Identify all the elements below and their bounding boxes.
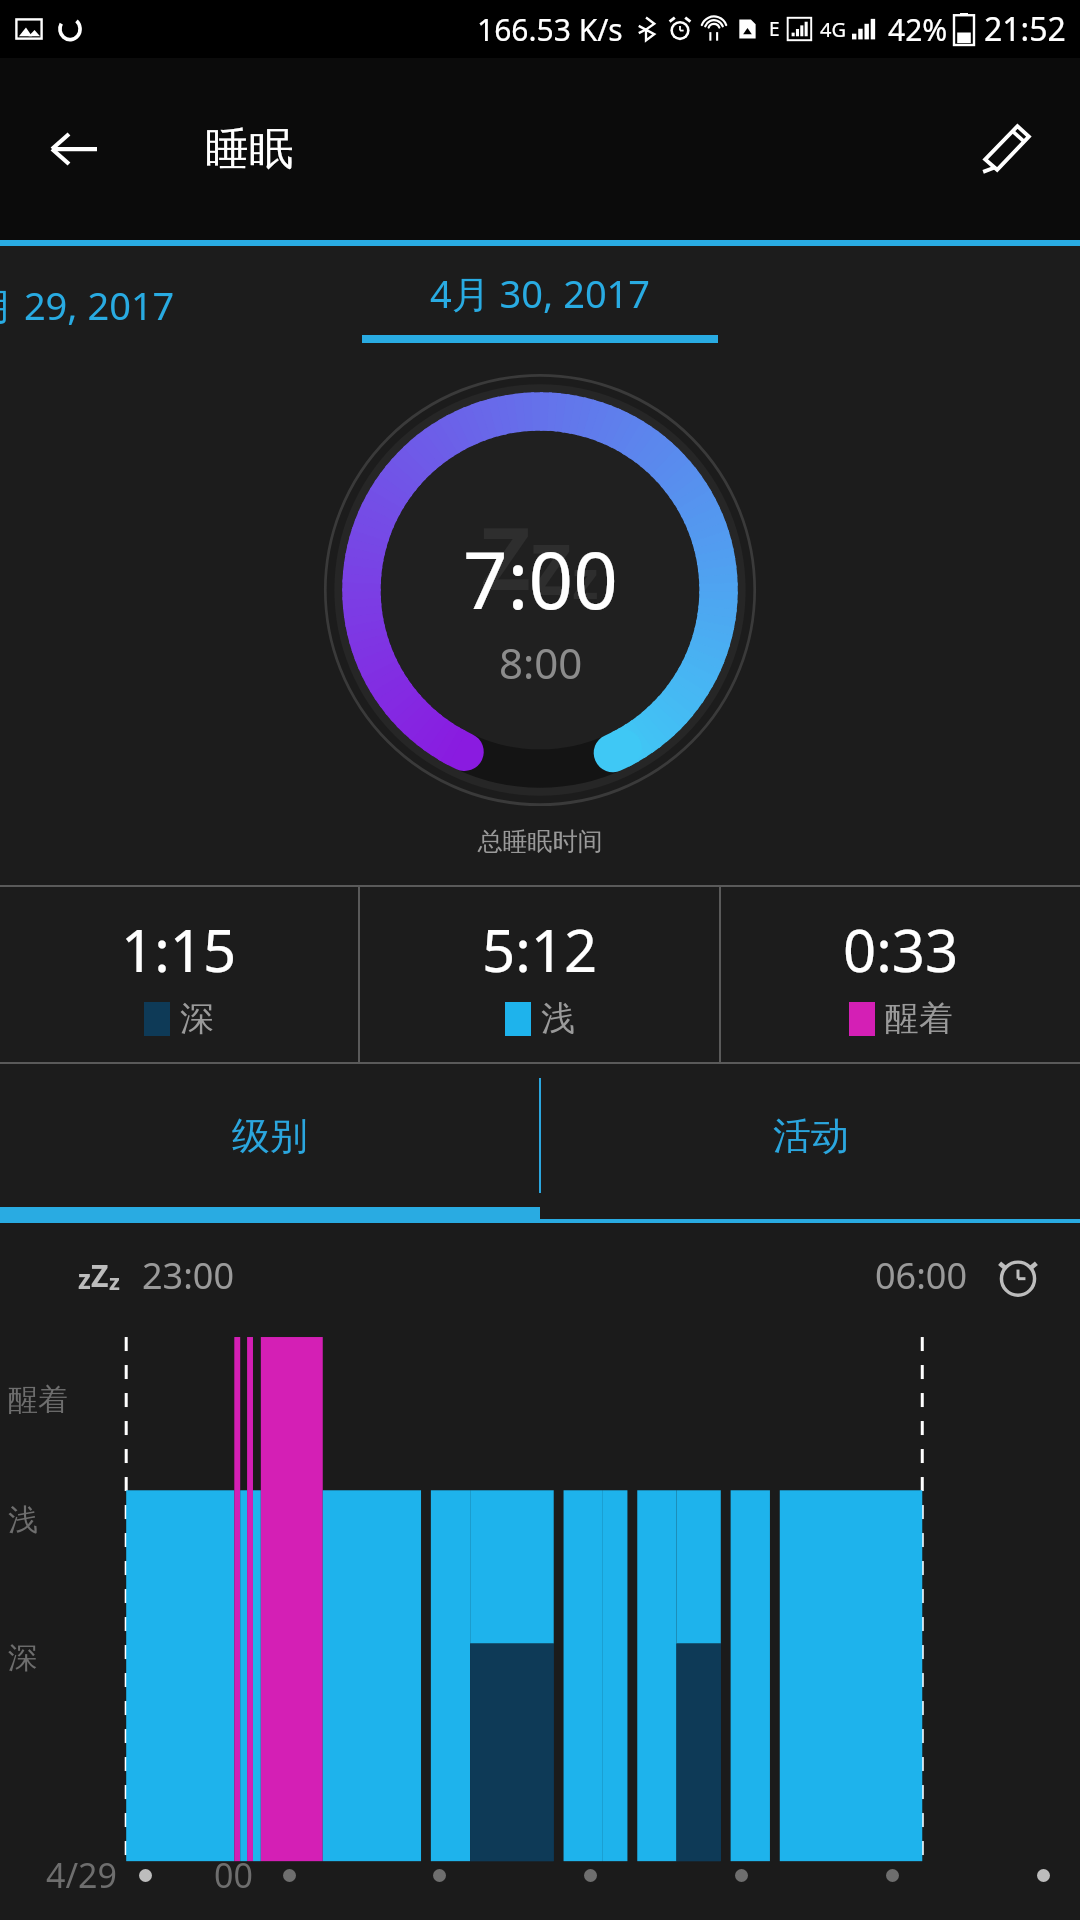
staticText: 0:33 (843, 910, 959, 989)
staticText: 166.53 K/s (477, 9, 623, 50)
button[interactable]: 1:15 (0, 887, 358, 1062)
staticText: 4G (820, 16, 846, 43)
button[interactable]: 级别 (0, 1064, 539, 1207)
staticText: 深 (180, 997, 214, 1040)
staticText: 醒着 (885, 997, 953, 1040)
staticText: E (769, 16, 780, 42)
staticText: 21:52 (984, 7, 1066, 51)
staticText: 总睡眠时间 (0, 826, 1080, 857)
staticText: 4月 30, 2017 (430, 267, 651, 319)
staticText: 4/29 (46, 1852, 117, 1898)
staticText: 活动 (773, 1112, 849, 1160)
staticText: 23:00 (142, 1251, 235, 1300)
button[interactable]: 5:12 (360, 887, 719, 1062)
staticText: z (572, 541, 599, 615)
button[interactable]: Back (36, 111, 112, 187)
button[interactable]: Edit (968, 111, 1044, 187)
staticText: 5:12 (482, 910, 598, 989)
staticText: 06:00 (875, 1251, 968, 1300)
staticText: z (78, 1261, 91, 1296)
staticText: 浅 (8, 1501, 38, 1539)
staticText: 8:00 (499, 634, 583, 691)
staticText: Z (91, 1255, 109, 1296)
staticText: 42% (888, 9, 948, 50)
staticText: 深 (8, 1639, 38, 1677)
staticText: 1:15 (121, 910, 237, 989)
staticText: 醒着 (8, 1381, 68, 1419)
staticText: 00 (214, 1852, 253, 1898)
button[interactable]: 0:33 (721, 887, 1080, 1062)
staticText: Z (531, 520, 572, 615)
staticText: 浅 (541, 997, 575, 1040)
button[interactable]: 月 29, 2017 (0, 279, 175, 331)
button[interactable]: Alarm (992, 1249, 1044, 1301)
staticText: 7:00 (463, 526, 618, 632)
staticText: Z (481, 498, 531, 615)
staticText: 级别 (232, 1112, 308, 1160)
button[interactable]: 活动 (541, 1064, 1080, 1207)
button[interactable]: 4月 30, 2017 (362, 267, 718, 343)
staticText: z (109, 1266, 120, 1296)
staticText: 睡眠 (205, 122, 293, 177)
